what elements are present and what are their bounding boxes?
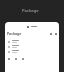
staticText: Package — [7, 31, 22, 36]
button[interactable]: Action — [7, 57, 11, 61]
button[interactable]: Search — [49, 32, 52, 35]
button[interactable] — [5, 39, 59, 44]
button[interactable]: Action — [21, 57, 25, 61]
button[interactable] — [5, 44, 59, 49]
staticText: Package — [22, 8, 39, 14]
button[interactable]: More options — [54, 32, 57, 35]
button[interactable]: Action — [14, 57, 18, 61]
button[interactable] — [5, 49, 59, 54]
